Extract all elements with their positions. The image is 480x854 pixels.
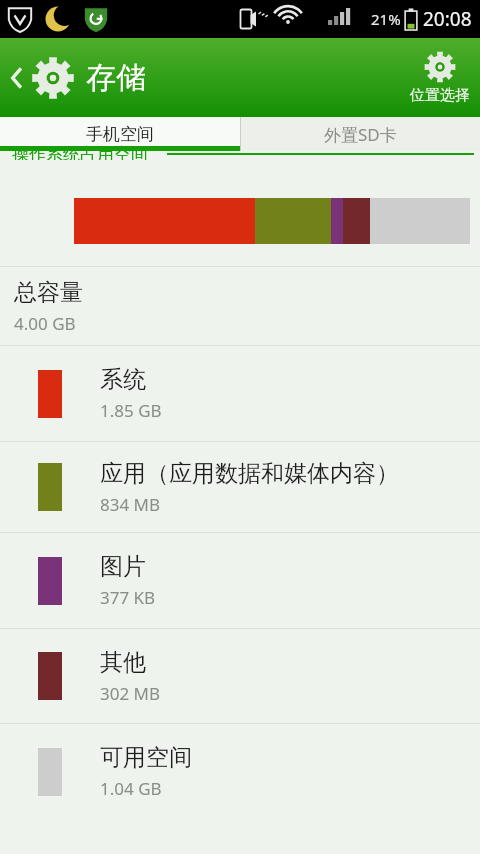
button[interactable]: 外置SD卡 bbox=[240, 117, 480, 151]
staticText: 21% bbox=[371, 9, 401, 29]
button[interactable]: 总容量 bbox=[0, 267, 480, 345]
button[interactable]: 存储 bbox=[0, 38, 158, 117]
staticText: 302 MB bbox=[100, 682, 161, 705]
staticText: 4.00 GB bbox=[14, 312, 76, 335]
button[interactable]: 图片 bbox=[0, 533, 480, 628]
staticText: 其他 bbox=[100, 648, 146, 677]
staticText: 图片 bbox=[100, 552, 146, 581]
staticText: 总容量 bbox=[14, 278, 83, 307]
staticText: 834 MB bbox=[100, 493, 161, 516]
staticText: 操作系统占用空间 bbox=[12, 144, 148, 160]
staticText: 手机空间 bbox=[86, 124, 154, 145]
button[interactable]: 应用（应用数据和媒体内容） bbox=[0, 442, 480, 532]
button[interactable]: 位置选择 bbox=[400, 38, 480, 117]
staticText: 位置选择 bbox=[410, 86, 470, 105]
button[interactable]: 手机空间 bbox=[0, 117, 240, 151]
staticText: 20:08 bbox=[423, 6, 472, 32]
staticText: 系统 bbox=[100, 365, 146, 394]
button[interactable]: 系统 bbox=[0, 346, 480, 441]
staticText: 1.04 GB bbox=[100, 777, 162, 800]
staticText: 外置SD卡 bbox=[324, 123, 397, 146]
staticText: 应用（应用数据和媒体内容） bbox=[100, 459, 399, 488]
button[interactable]: 其他 bbox=[0, 629, 480, 723]
staticText: 1.85 GB bbox=[100, 399, 162, 422]
button[interactable]: 可用空间 bbox=[0, 724, 480, 819]
staticText: 可用空间 bbox=[100, 743, 192, 772]
staticText: 存储 bbox=[86, 59, 146, 97]
staticText: 377 KB bbox=[100, 586, 156, 609]
